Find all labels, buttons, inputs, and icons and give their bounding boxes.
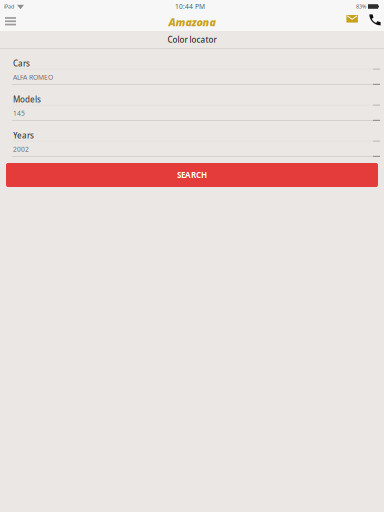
button[interactable]: Models xyxy=(0,85,384,121)
staticText: 2002 xyxy=(13,145,29,154)
button[interactable]: Mail xyxy=(342,13,363,31)
staticText: SEARCH xyxy=(177,170,207,180)
staticText: 145 xyxy=(13,109,25,118)
button[interactable]: Years xyxy=(0,121,384,157)
staticText: 10:44 PM xyxy=(175,2,205,11)
staticText: 83% xyxy=(356,3,366,10)
button[interactable]: Menu xyxy=(0,13,22,31)
staticText: Color locator xyxy=(167,34,216,45)
staticText: Models xyxy=(13,94,41,105)
staticText: Years xyxy=(13,130,34,141)
button[interactable]: Call xyxy=(363,13,384,31)
staticText: ALFA ROMEO xyxy=(13,73,53,82)
staticText: Cars xyxy=(13,58,30,69)
staticText: iPad xyxy=(4,3,14,10)
button[interactable]: Cars xyxy=(0,49,384,85)
staticText: Amazona xyxy=(168,15,215,29)
button[interactable]: SEARCH xyxy=(6,163,378,187)
